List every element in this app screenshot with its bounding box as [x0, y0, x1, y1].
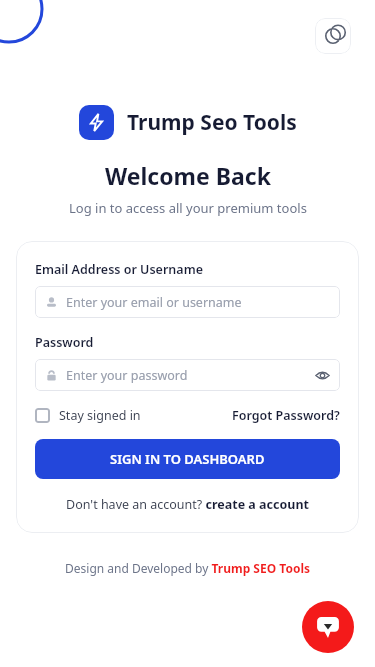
staticText: Enter your email or username: [66, 294, 242, 311]
staticText: Trump Seo Tools: [127, 108, 297, 137]
button[interactable]: Open chat: [302, 601, 354, 653]
button[interactable]: Stay signed in: [35, 407, 141, 424]
staticText: SIGN IN TO DASHBOARD: [110, 450, 265, 468]
staticText: Design and Developed by Trump SEO Tools: [65, 560, 310, 576]
staticText: Email Address or Username: [35, 261, 203, 278]
button[interactable]: Toggle dark mode: [315, 18, 351, 54]
staticText: Enter your password: [66, 367, 188, 384]
staticText: Don't have an account? create a account: [66, 496, 309, 513]
staticText: Log in to access all your premium tools: [69, 199, 307, 217]
staticText: Stay signed in: [59, 407, 141, 424]
button[interactable]: Enter your email or username: [35, 286, 340, 318]
button[interactable]: Forgot Password?: [232, 407, 340, 424]
staticText: Forgot Password?: [232, 407, 340, 424]
other: Show password: [315, 368, 330, 383]
button[interactable]: SIGN IN TO DASHBOARD: [35, 439, 340, 479]
button[interactable]: Don't have an account? create a account: [35, 496, 340, 513]
staticText: Welcome Back: [105, 160, 271, 191]
button[interactable]: Enter your password: [35, 359, 340, 391]
staticText: Password: [35, 334, 94, 351]
